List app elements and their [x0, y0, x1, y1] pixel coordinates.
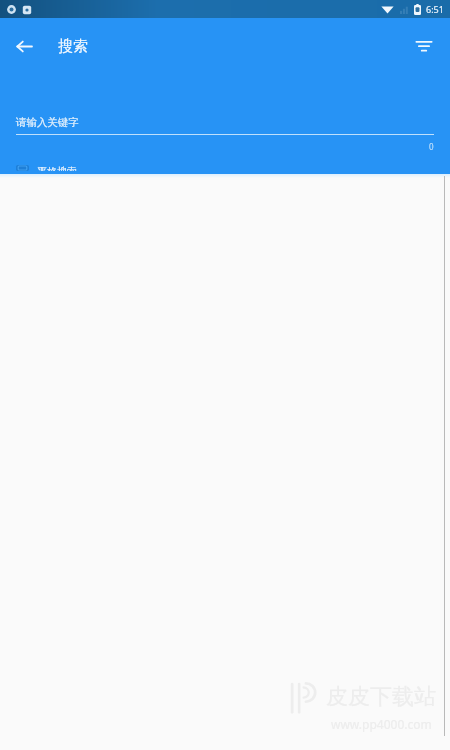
staticText: 0	[429, 141, 434, 152]
staticText: www.pp4000.com	[331, 716, 432, 732]
button[interactable]: Filter	[404, 26, 444, 66]
button[interactable]: 严格搜索	[14, 162, 79, 174]
staticText: 6:51	[426, 3, 444, 15]
staticText: 皮皮下载站	[326, 683, 436, 711]
button[interactable]: Back	[4, 26, 44, 66]
staticText: 搜索	[58, 37, 88, 56]
staticText: 严格搜索	[37, 165, 77, 171]
staticText: 请输入关键字	[16, 116, 79, 129]
